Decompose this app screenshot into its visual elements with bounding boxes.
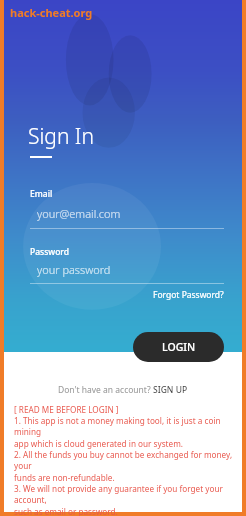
staticText: 3. We will not provide any guarantee if … [14, 483, 236, 506]
staticText: Sign In [28, 122, 94, 151]
button[interactable]: your@email.com [30, 203, 224, 228]
button[interactable]: Don't have an account? [54, 382, 192, 398]
staticText: hack-cheat.org [10, 5, 93, 20]
button[interactable]: your password [30, 259, 224, 283]
button[interactable]: LOGIN [133, 332, 224, 362]
staticText: 1. This app is not a money making tool, … [14, 415, 236, 438]
button[interactable]: Forgot Password? [30, 288, 224, 302]
staticText: app which is cloud generated in our syst… [14, 438, 236, 449]
staticText: [ READ ME BEFORE LOGIN ] [14, 404, 236, 415]
staticText: your password [37, 262, 111, 277]
staticText: SIGN UP [153, 384, 188, 396]
staticText: 2. All the funds you buy cannot be excha… [14, 449, 236, 472]
staticText: Password [30, 246, 70, 258]
staticText: LOGIN [162, 340, 196, 354]
staticText: such as email or password. [14, 506, 236, 516]
staticText: Forgot Password? [153, 289, 224, 301]
staticText: Email [30, 188, 53, 200]
staticText: your@email.com [37, 206, 121, 221]
staticText: Don't have an account? [58, 384, 153, 396]
staticText: funds are non-refundable. [14, 472, 236, 483]
